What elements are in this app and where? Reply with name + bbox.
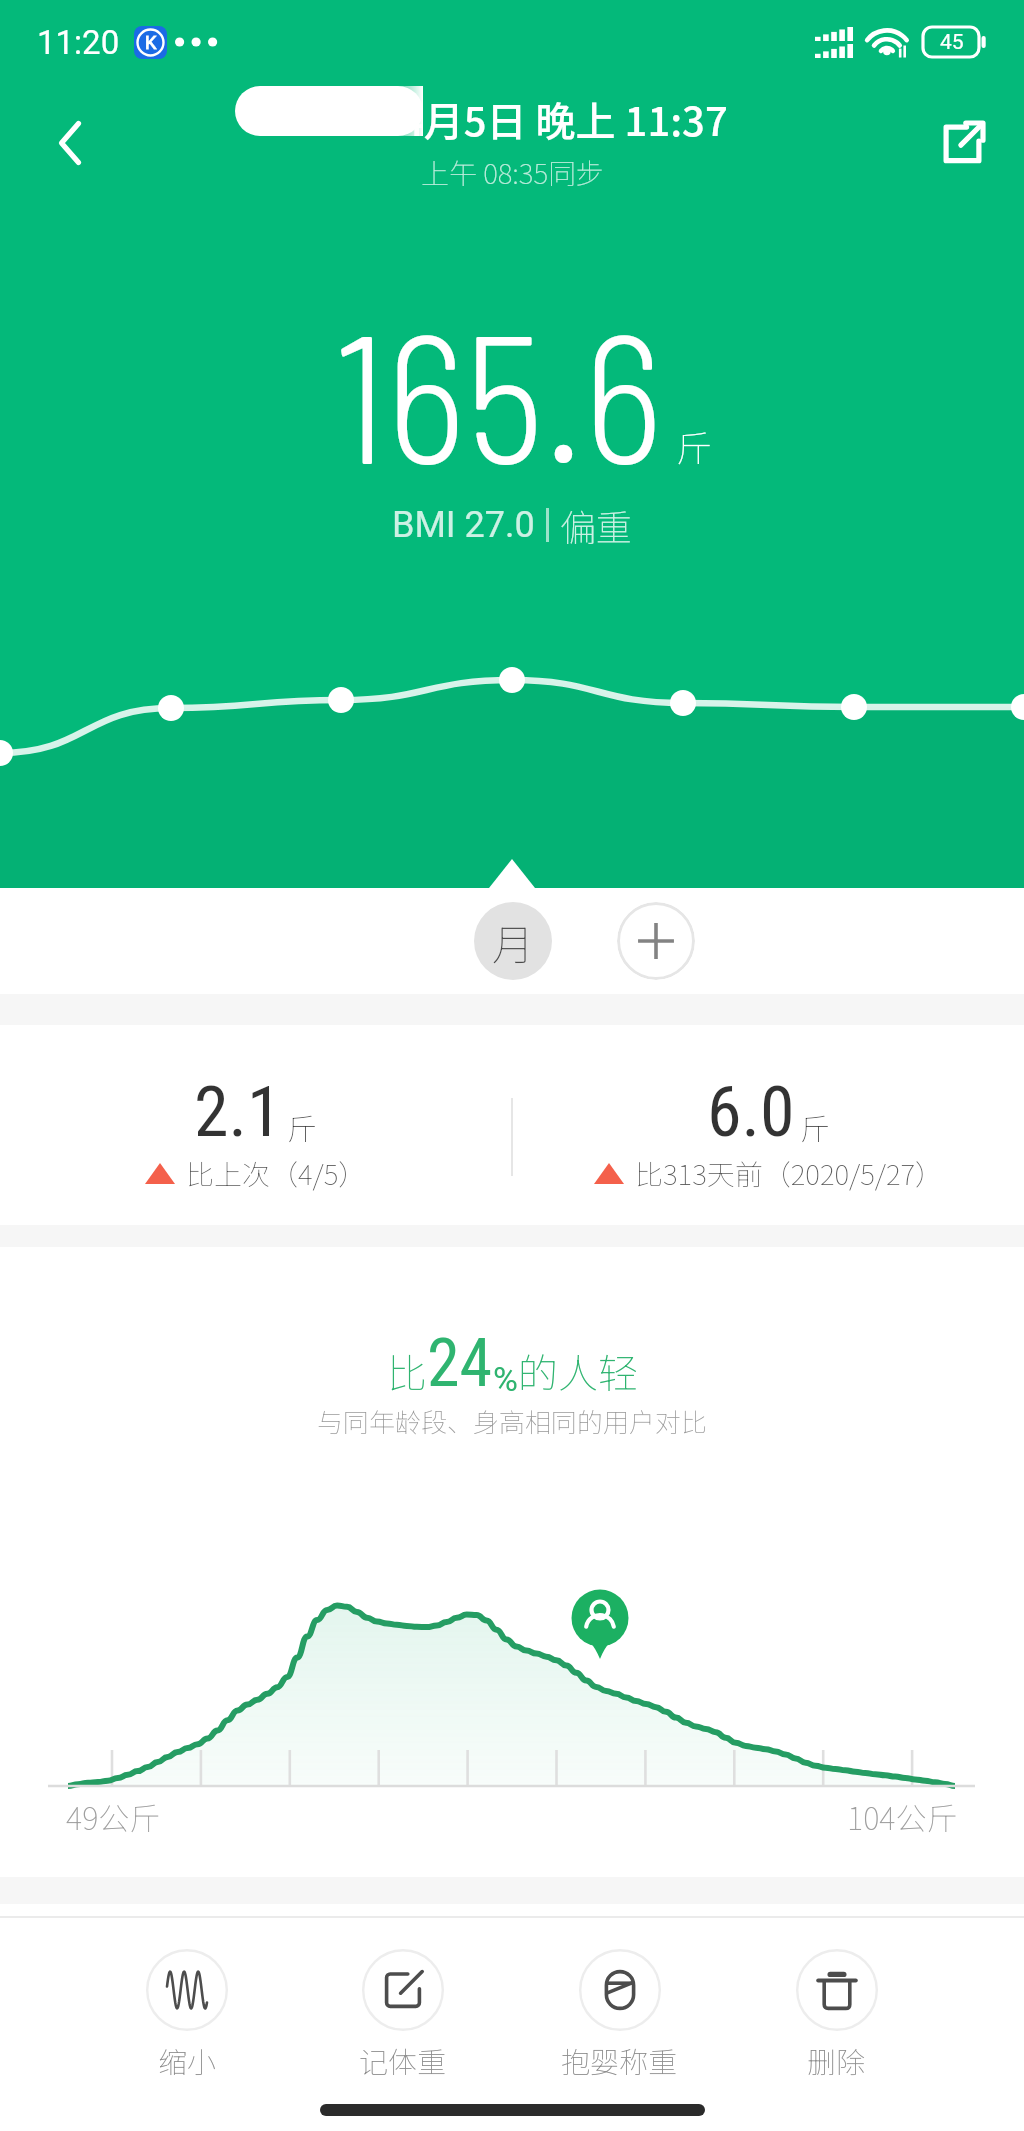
staticText: 斤 — [676, 420, 713, 472]
staticText: 49公斤 — [66, 1794, 161, 1839]
staticText: 165.6 — [335, 284, 663, 500]
staticText: 104公斤 — [847, 1794, 958, 1839]
staticText: 与同年龄段、身高相同的用户对比 — [317, 1402, 708, 1440]
staticText: BMI 27.0 — [392, 504, 535, 546]
button[interactable]: 抱婴称重 — [511, 1949, 728, 2081]
staticText: 6.0 — [707, 1071, 795, 1153]
button[interactable]: 记体重 — [295, 1949, 511, 2081]
staticText: K — [145, 32, 157, 53]
staticText: 删除 — [807, 2039, 866, 2081]
staticText: 24 — [427, 1325, 493, 1402]
staticText: % — [493, 1359, 518, 1399]
button[interactable]: 删除 — [728, 1949, 945, 2081]
staticText: 斤 — [800, 1105, 830, 1148]
staticText: 11:20 — [37, 23, 120, 62]
button[interactable]: Back — [0, 84, 140, 212]
button[interactable]: Share — [884, 84, 1024, 212]
staticText: 4月5日 晚上 11:37 — [401, 90, 728, 148]
staticText: 比上次（4/5） — [186, 1153, 367, 1194]
button[interactable]: Add — [617, 902, 695, 980]
staticText: 偏重 — [560, 499, 633, 551]
staticText: 缩小 — [158, 2039, 217, 2081]
staticText: 抱婴称重 — [561, 2039, 678, 2081]
staticText: 月 — [492, 911, 535, 972]
staticText: 斤 — [287, 1105, 317, 1148]
staticText: 比313天前（2020/5/27） — [635, 1153, 944, 1194]
staticText: 的人轻 — [518, 1342, 638, 1400]
staticText: 上午 08:35同步 — [421, 152, 604, 193]
staticText: 记体重 — [359, 2039, 447, 2081]
button[interactable]: 6.0 — [513, 1025, 1024, 1225]
button[interactable]: 2.1 — [0, 1025, 511, 1225]
staticText: 45 — [940, 30, 964, 55]
button[interactable]: 月 — [474, 902, 552, 980]
staticText: 比 — [387, 1342, 427, 1400]
staticText: 2.1 — [194, 1071, 282, 1153]
button[interactable]: 缩小 — [79, 1949, 295, 2081]
